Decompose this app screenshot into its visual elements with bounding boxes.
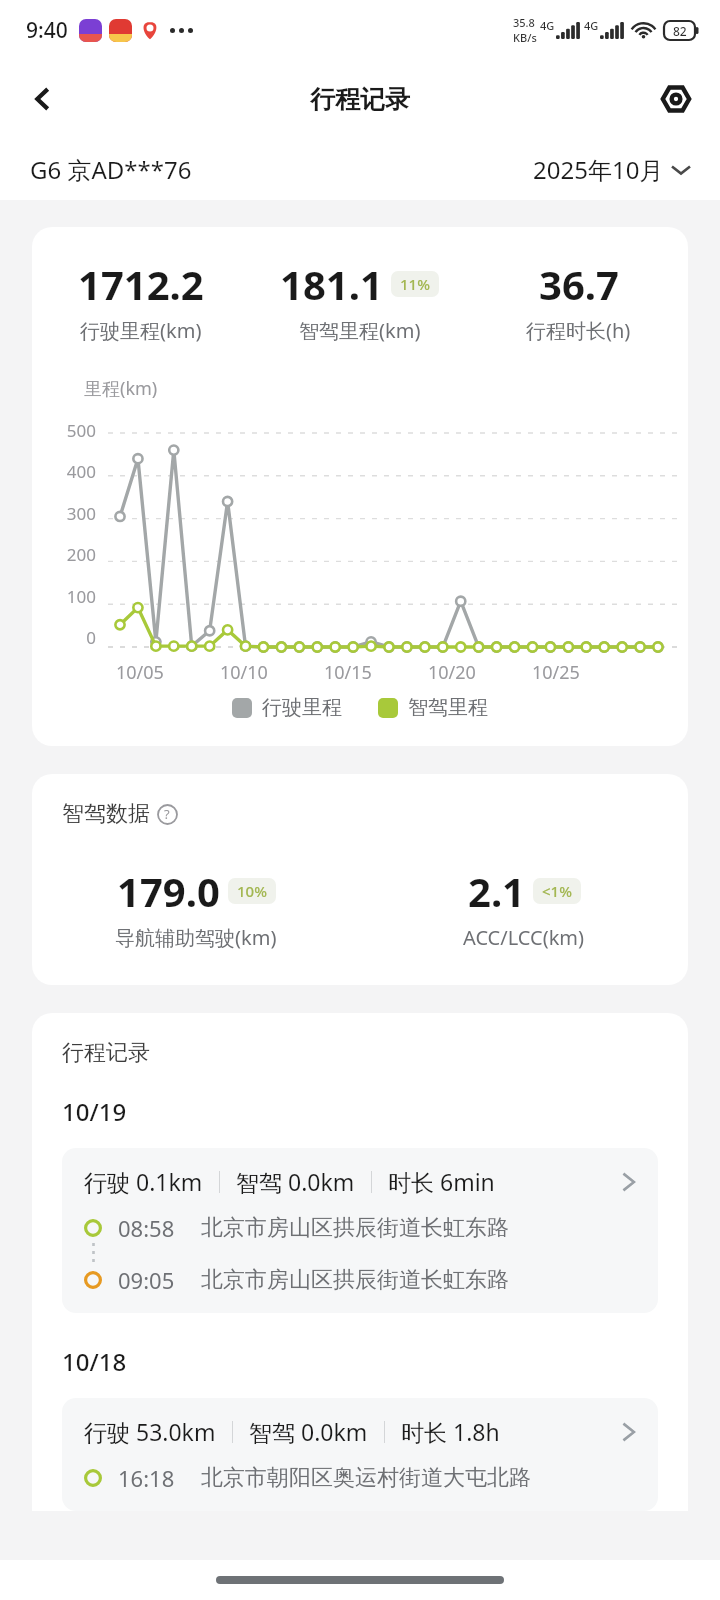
staticText: 1712.2 — [78, 257, 204, 311]
staticText: 行驶 0.1km — [84, 1166, 203, 1197]
staticText: 10/15 — [324, 660, 372, 685]
button[interactable]: 2025年10月 — [533, 153, 690, 186]
staticText: 500 — [52, 419, 96, 442]
staticText: 行程记录 — [62, 1039, 150, 1067]
staticText: 16:18 — [118, 1463, 175, 1493]
staticText: 行驶里程 — [262, 695, 342, 720]
staticText: 4G — [584, 18, 599, 33]
staticText: 里程(km) — [84, 376, 158, 401]
staticText: 10/19 — [62, 1095, 127, 1128]
staticText: 2.1 — [468, 864, 525, 918]
staticText: 10/20 — [428, 660, 476, 685]
staticText: KB/s — [513, 30, 537, 45]
staticText: 179.0 — [117, 864, 220, 918]
staticText: 4G — [540, 18, 555, 33]
staticText: 10/25 — [532, 660, 580, 685]
staticText: 北京市房山区拱辰街道长虹东路 — [201, 1266, 509, 1294]
staticText: 200 — [52, 543, 96, 566]
staticText: 82 — [673, 23, 687, 39]
staticText: 智驾里程(km) — [299, 317, 421, 344]
staticText: 10/18 — [62, 1345, 127, 1378]
staticText: 时长 6min — [388, 1166, 495, 1197]
staticText: 300 — [52, 502, 96, 525]
staticText: 智驾数据 — [62, 800, 150, 828]
staticText: 10/05 — [116, 660, 164, 685]
staticText: G6 京AD***76 — [30, 153, 192, 186]
staticText: 36.7 — [539, 257, 619, 311]
staticText: 10% — [237, 881, 267, 901]
staticText: 400 — [52, 460, 96, 483]
button[interactable]: Back — [14, 70, 72, 128]
staticText: <1% — [542, 881, 572, 901]
staticText: 时长 1.8h — [401, 1416, 500, 1447]
staticText: 行驶 53.0km — [84, 1416, 216, 1447]
staticText: 北京市房山区拱辰街道长虹东路 — [201, 1214, 509, 1242]
staticText: 2025年10月 — [533, 153, 664, 186]
button[interactable]: 行驶 53.0km — [62, 1398, 658, 1511]
staticText: 100 — [52, 585, 96, 608]
staticText: ACC/LCC(km) — [463, 924, 585, 951]
staticText: 10/10 — [220, 660, 268, 685]
button[interactable]: 行驶 0.1km — [62, 1148, 658, 1313]
staticText: 导航辅助驾驶(km) — [115, 924, 277, 951]
staticText: 08:58 — [118, 1213, 175, 1243]
staticText: 9:40 — [26, 16, 68, 45]
staticText: 0 — [52, 626, 96, 649]
staticText: ? — [164, 805, 170, 823]
staticText: 智驾里程 — [408, 695, 488, 720]
staticText: 09:05 — [118, 1265, 175, 1295]
button[interactable]: Help — [155, 802, 179, 826]
staticText: 11% — [400, 274, 430, 294]
staticText: 行程时长(h) — [526, 317, 631, 344]
staticText: 行程记录 — [310, 84, 410, 115]
staticText: 35.8 — [513, 15, 535, 30]
staticText: 行驶里程(km) — [80, 317, 202, 344]
staticText: 智驾 0.0km — [249, 1416, 368, 1447]
staticText: 181.1 — [280, 257, 383, 311]
staticText: 智驾 0.0km — [236, 1166, 355, 1197]
staticText: 北京市朝阳区奥运村街道大屯北路 — [201, 1464, 531, 1492]
button[interactable]: Settings — [648, 71, 704, 127]
